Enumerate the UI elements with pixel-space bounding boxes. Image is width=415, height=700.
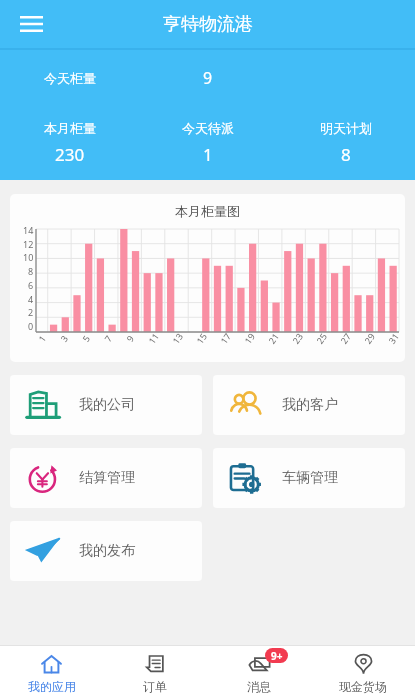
staticText: 我的客户 <box>282 396 338 414</box>
staticText: 本月柜量图 <box>10 203 405 219</box>
staticText: 4 <box>28 293 34 305</box>
button[interactable]: 9+ <box>207 646 311 700</box>
staticText: 0 <box>28 320 34 332</box>
staticText: 27 <box>337 330 353 346</box>
button[interactable]: 我的发布 <box>10 521 202 581</box>
staticText: 15 <box>193 330 209 346</box>
staticText: 25 <box>313 330 329 346</box>
staticText: 本月柜量 <box>44 120 96 136</box>
button[interactable]: Menu <box>10 3 52 45</box>
staticText: 2 <box>28 306 34 318</box>
staticText: 29 <box>361 330 377 346</box>
staticText: 我的发布 <box>79 542 135 560</box>
staticText: 21 <box>265 330 281 346</box>
staticText: 11 <box>145 330 161 346</box>
staticText: 7 <box>101 332 115 344</box>
staticText: 9+ <box>271 649 283 663</box>
staticText: 6 <box>28 279 34 291</box>
staticText: 5 <box>79 332 93 344</box>
staticText: 今天待派 <box>182 120 234 136</box>
staticText: 我的公司 <box>79 396 135 414</box>
staticText: 23 <box>289 330 305 346</box>
staticText: 消息 <box>247 679 271 694</box>
staticText: 车辆管理 <box>282 469 338 487</box>
staticText: 13 <box>169 330 185 346</box>
staticText: 9 <box>123 332 137 344</box>
staticText: 现金货场 <box>339 679 387 694</box>
button[interactable]: 车辆管理 <box>213 448 405 508</box>
staticText: 8 <box>28 265 34 277</box>
button[interactable]: 我的公司 <box>10 375 202 435</box>
button[interactable]: 现金货场 <box>311 646 415 700</box>
staticText: 10 <box>23 251 34 263</box>
staticText: 今天柜量 <box>44 70 96 86</box>
staticText: 12 <box>23 238 34 250</box>
staticText: 订单 <box>143 679 167 694</box>
staticText: 8 <box>341 143 351 166</box>
staticText: 31 <box>385 330 401 346</box>
staticText: 14 <box>23 224 34 236</box>
staticText: 17 <box>217 330 233 346</box>
staticText: 亨特物流港 <box>163 13 253 36</box>
staticText: 3 <box>57 332 71 344</box>
button[interactable]: 订单 <box>103 646 207 700</box>
button[interactable]: 我的客户 <box>213 375 405 435</box>
staticText: 19 <box>241 330 257 346</box>
staticText: 明天计划 <box>320 120 372 136</box>
staticText: 1 <box>203 143 213 166</box>
staticText: 我的应用 <box>28 679 76 694</box>
button[interactable]: 我的应用 <box>0 646 103 700</box>
button[interactable]: 结算管理 <box>10 448 202 508</box>
staticText: 1 <box>35 332 49 344</box>
staticText: 9 <box>203 67 213 89</box>
staticText: 230 <box>55 143 85 166</box>
staticText: 结算管理 <box>79 469 135 487</box>
